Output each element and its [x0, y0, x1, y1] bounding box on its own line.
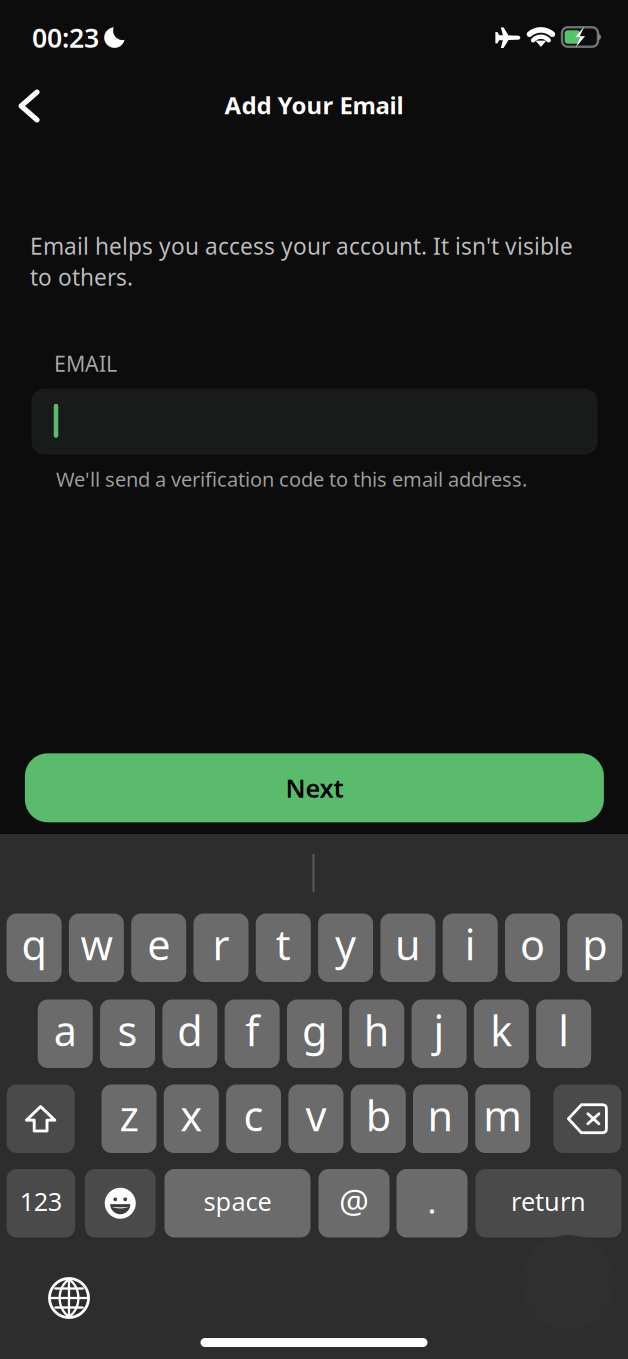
- button[interactable]: a: [38, 999, 93, 1068]
- button[interactable]: Shift: [7, 1084, 75, 1153]
- button[interactable]: k: [474, 999, 529, 1068]
- staticText: h: [364, 1003, 390, 1058]
- staticText: b: [366, 1088, 391, 1143]
- button[interactable]: i: [443, 913, 498, 982]
- button[interactable]: w: [69, 913, 124, 982]
- staticText: w: [80, 917, 112, 972]
- button[interactable]: .: [396, 1169, 467, 1237]
- button[interactable]: t: [256, 913, 311, 982]
- staticText: j: [433, 1003, 444, 1058]
- button[interactable]: c: [226, 1084, 281, 1153]
- button[interactable]: n: [413, 1084, 468, 1153]
- staticText: n: [427, 1088, 453, 1143]
- staticText: o: [520, 917, 545, 972]
- button[interactable]: Delete: [553, 1084, 621, 1153]
- staticText: i: [465, 917, 476, 972]
- button[interactable]: r: [193, 913, 248, 982]
- staticText: x: [180, 1088, 202, 1143]
- staticText: e: [147, 917, 170, 972]
- staticText: g: [302, 1003, 327, 1058]
- button[interactable]: f: [225, 999, 280, 1068]
- staticText: Next: [285, 771, 343, 805]
- staticText: 00:23: [32, 20, 99, 55]
- button[interactable]: Next: [25, 753, 604, 822]
- button[interactable]: d: [162, 999, 217, 1068]
- staticText: s: [117, 1003, 137, 1058]
- staticText: a: [54, 1003, 77, 1058]
- staticText: 123: [20, 1184, 62, 1218]
- staticText: d: [177, 1003, 202, 1058]
- button[interactable]: z: [101, 1084, 156, 1153]
- staticText: return: [511, 1184, 586, 1218]
- staticText: We'll send a verification code to this e…: [56, 466, 527, 492]
- button[interactable]: Back: [1, 78, 57, 134]
- button[interactable]: x: [164, 1084, 219, 1153]
- button[interactable]: 123: [7, 1169, 75, 1237]
- staticText: f: [245, 1003, 259, 1058]
- staticText: y: [335, 917, 356, 972]
- button[interactable]: v: [288, 1084, 343, 1153]
- button[interactable]: y: [318, 913, 373, 982]
- button[interactable]: s: [100, 999, 155, 1068]
- button[interactable]: h: [349, 999, 404, 1068]
- button[interactable]: u: [380, 913, 435, 982]
- button[interactable]: Emoji: [85, 1169, 155, 1237]
- button[interactable]: m: [475, 1084, 530, 1153]
- staticText: EMAIL: [54, 349, 117, 378]
- staticText: to others.: [30, 262, 133, 292]
- staticText: .: [427, 1179, 436, 1223]
- button[interactable]: space: [164, 1169, 310, 1237]
- button[interactable]: b: [351, 1084, 406, 1153]
- staticText: u: [395, 917, 421, 972]
- staticText: q: [22, 917, 47, 972]
- button[interactable]: return: [475, 1169, 621, 1237]
- button[interactable]: q: [7, 913, 62, 982]
- button[interactable]: p: [567, 913, 622, 982]
- staticText: k: [490, 1003, 512, 1058]
- staticText: @: [339, 1179, 369, 1223]
- staticText: Email helps you access your account. It …: [30, 231, 573, 261]
- staticText: l: [558, 1003, 569, 1058]
- button[interactable]: Next keyboard: [41, 1270, 97, 1326]
- staticText: z: [119, 1088, 138, 1143]
- staticText: t: [276, 917, 291, 972]
- button[interactable]: Email: [31, 388, 597, 454]
- button[interactable]: @: [318, 1169, 389, 1237]
- staticText: p: [582, 917, 607, 972]
- staticText: c: [244, 1088, 264, 1143]
- button[interactable]: j: [411, 999, 466, 1068]
- staticText: space: [203, 1184, 271, 1218]
- staticText: m: [483, 1088, 522, 1143]
- button[interactable]: g: [287, 999, 342, 1068]
- button[interactable]: l: [536, 999, 591, 1068]
- button[interactable]: e: [131, 913, 186, 982]
- staticText: v: [305, 1088, 326, 1143]
- staticText: r: [212, 917, 229, 972]
- staticText: Add Your Email: [224, 89, 403, 121]
- button[interactable]: o: [505, 913, 560, 982]
